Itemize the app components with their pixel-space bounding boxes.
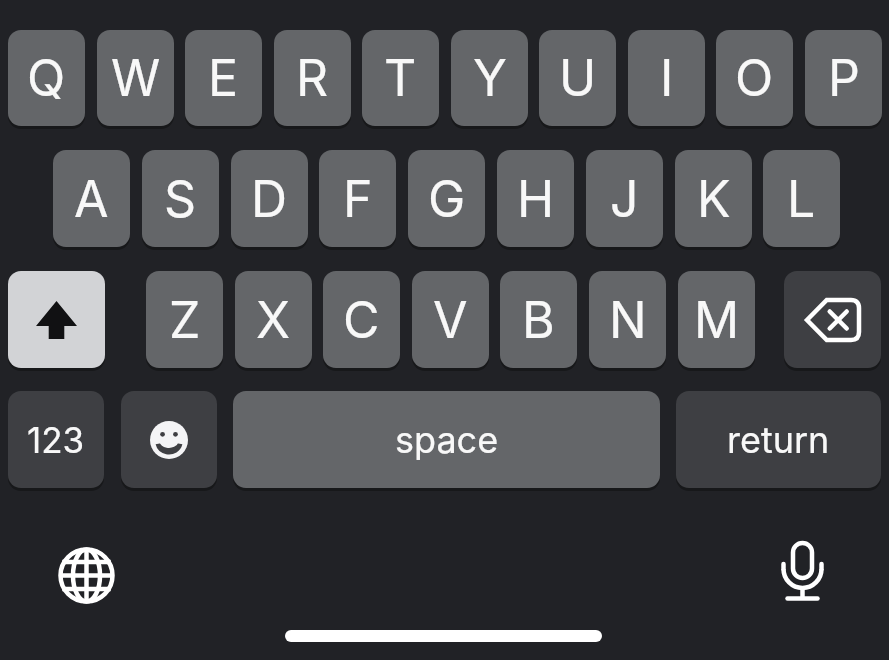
button[interactable]: H bbox=[497, 150, 574, 247]
staticText: V bbox=[433, 290, 468, 350]
staticText: W bbox=[111, 48, 161, 108]
button[interactable]: Y bbox=[451, 30, 528, 126]
button[interactable]: M bbox=[678, 271, 755, 368]
button[interactable]: U bbox=[539, 30, 616, 126]
staticText: Q bbox=[27, 48, 66, 108]
button[interactable] bbox=[776, 540, 829, 604]
staticText: N bbox=[609, 290, 647, 350]
staticText: return bbox=[727, 418, 830, 462]
button[interactable] bbox=[784, 271, 881, 368]
button[interactable] bbox=[121, 391, 217, 488]
button[interactable]: R bbox=[274, 30, 351, 126]
button[interactable]: B bbox=[500, 271, 577, 368]
button[interactable] bbox=[56, 545, 117, 606]
staticText: C bbox=[343, 290, 380, 350]
button[interactable]: Q bbox=[8, 30, 85, 126]
button[interactable]: K bbox=[675, 150, 752, 247]
staticText: O bbox=[735, 48, 774, 108]
button[interactable]: S bbox=[142, 150, 219, 247]
button[interactable]: T bbox=[362, 30, 439, 126]
staticText: T bbox=[384, 48, 417, 108]
button[interactable] bbox=[8, 271, 105, 368]
staticText: P bbox=[828, 48, 860, 108]
staticText: S bbox=[164, 169, 197, 229]
button[interactable]: 123 bbox=[8, 391, 104, 488]
staticText: A bbox=[74, 169, 109, 229]
staticText: space bbox=[395, 418, 499, 462]
button[interactable]: return bbox=[676, 391, 881, 488]
staticText: F bbox=[343, 169, 373, 229]
staticText: M bbox=[694, 290, 740, 350]
staticText: J bbox=[610, 169, 639, 229]
button[interactable]: Z bbox=[146, 271, 223, 368]
staticText: H bbox=[517, 169, 555, 229]
button[interactable]: W bbox=[97, 30, 174, 126]
button[interactable]: P bbox=[805, 30, 882, 126]
staticText: 123 bbox=[27, 419, 85, 461]
staticText: K bbox=[697, 169, 731, 229]
button[interactable]: O bbox=[716, 30, 793, 126]
button[interactable]: D bbox=[231, 150, 308, 247]
staticText: X bbox=[256, 290, 291, 350]
button[interactable]: C bbox=[323, 271, 400, 368]
button[interactable]: F bbox=[319, 150, 396, 247]
button[interactable]: L bbox=[763, 150, 840, 247]
staticText: U bbox=[559, 48, 597, 108]
button[interactable]: J bbox=[586, 150, 663, 247]
staticText: R bbox=[296, 48, 329, 108]
button[interactable]: A bbox=[53, 150, 130, 247]
button[interactable]: X bbox=[235, 271, 312, 368]
button[interactable]: E bbox=[185, 30, 262, 126]
button[interactable]: space bbox=[233, 391, 660, 488]
button[interactable]: N bbox=[589, 271, 666, 368]
button[interactable]: I bbox=[628, 30, 705, 126]
staticText: Y bbox=[473, 48, 507, 108]
button[interactable]: G bbox=[408, 150, 485, 247]
staticText: L bbox=[787, 169, 816, 229]
staticText: Z bbox=[169, 290, 201, 350]
staticText: E bbox=[208, 48, 239, 108]
staticText: I bbox=[660, 48, 674, 108]
staticText: D bbox=[251, 169, 288, 229]
button[interactable]: V bbox=[412, 271, 489, 368]
staticText: B bbox=[522, 290, 555, 350]
staticText: G bbox=[428, 169, 466, 229]
